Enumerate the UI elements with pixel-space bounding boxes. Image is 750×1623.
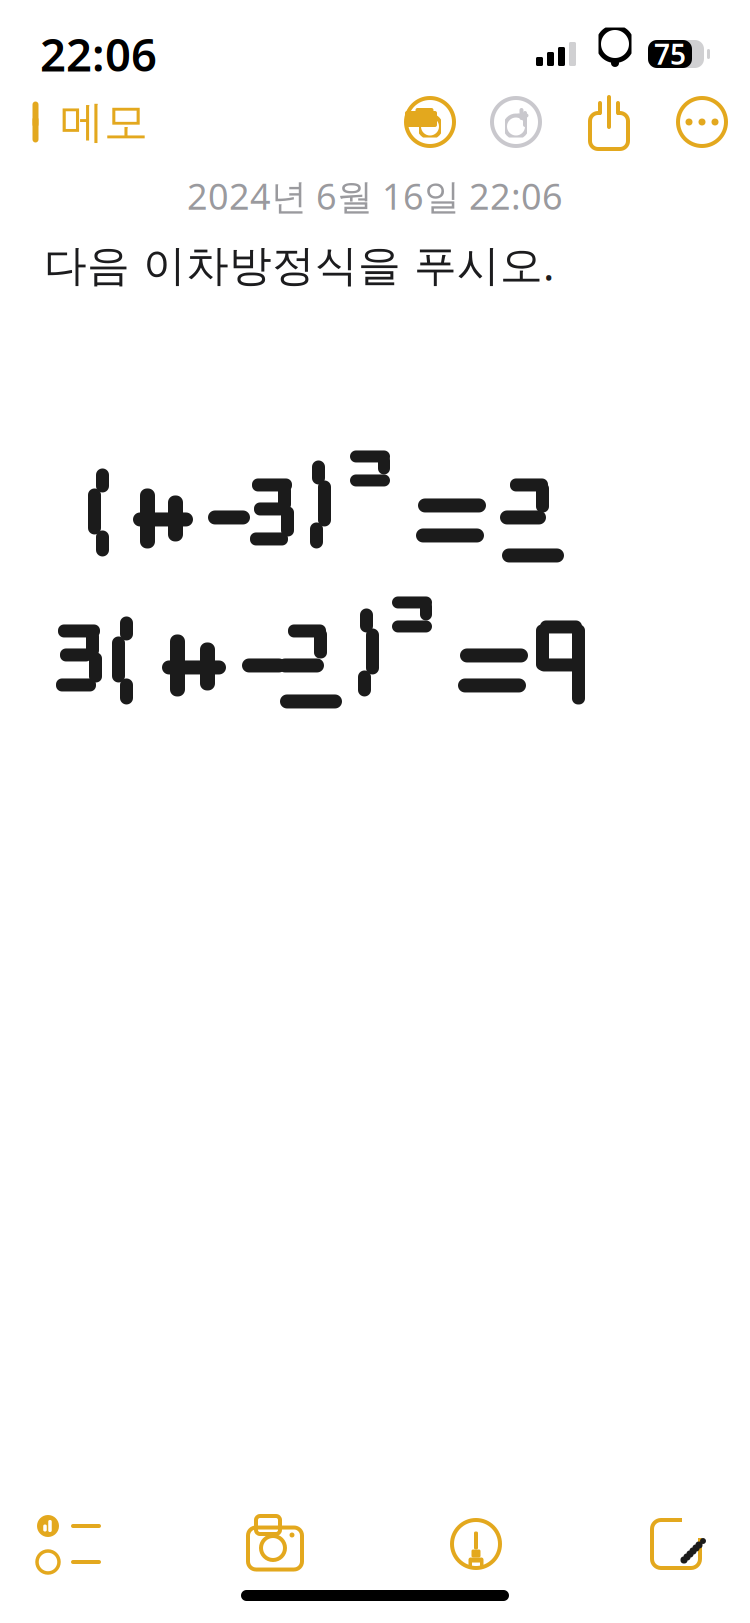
button[interactable]: Checklist (18, 1503, 120, 1585)
button[interactable]: Redo (490, 96, 542, 148)
staticText: 2024년 6월 16일 22:06 (187, 172, 563, 220)
button[interactable]: Markup (430, 1505, 522, 1583)
staticText: 75 (654, 35, 686, 73)
button[interactable]: New Note (628, 1505, 724, 1583)
button[interactable]: Camera (226, 1506, 324, 1582)
button[interactable]: Undo (404, 96, 456, 148)
button[interactable]: Share (586, 94, 632, 150)
button[interactable]: More (676, 96, 728, 148)
staticText: 22:06 (40, 24, 157, 84)
staticText: 메모 (60, 95, 148, 149)
button[interactable]: 메모 (22, 89, 152, 155)
staticText: 다음 이차방정식을 푸시오. (44, 236, 554, 292)
